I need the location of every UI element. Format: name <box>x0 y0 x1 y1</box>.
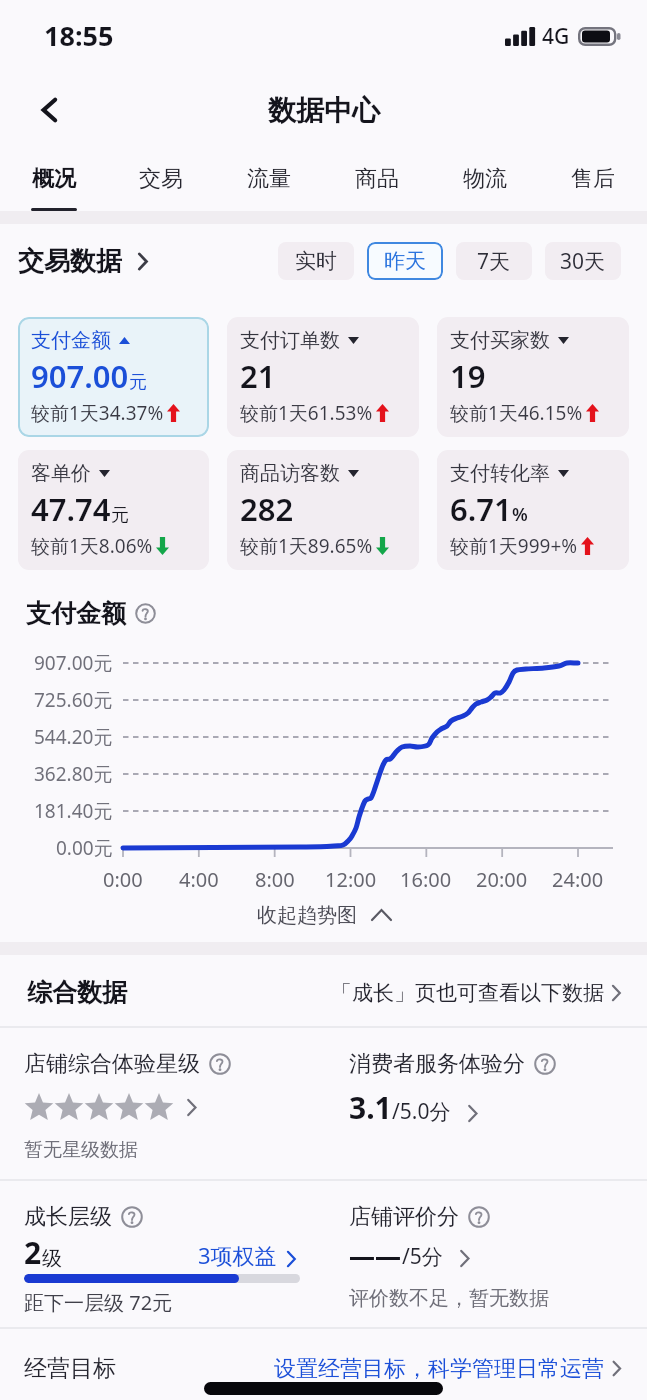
button[interactable]: 收起趋势图 <box>0 895 647 935</box>
staticText: 支付金额 <box>26 598 126 629</box>
staticText: 支付转化率 <box>450 461 550 486</box>
staticText: 181.40元 <box>34 798 113 824</box>
staticText: 0:00 <box>103 866 143 893</box>
staticText: 12:00 <box>325 866 377 893</box>
staticText: 商品访客数 <box>240 461 340 486</box>
staticText: 较前1天34.37% <box>31 400 164 426</box>
staticText: 「成长」页也可查看以下数据 <box>331 980 604 1006</box>
button[interactable]: 昨天 <box>367 242 443 280</box>
staticText: 30天 <box>560 247 606 276</box>
staticText: 经营目标 <box>24 1354 116 1383</box>
staticText: 交易数据 <box>18 245 122 278</box>
staticText: 店铺评价分 <box>349 1203 459 1231</box>
staticText: 8:00 <box>255 866 295 893</box>
button[interactable]: 交易数据 <box>18 245 152 278</box>
staticText: —— <box>349 1238 402 1273</box>
staticText: 较前1天89.65% <box>240 533 373 559</box>
button[interactable]: 商品访客数 <box>227 450 419 570</box>
staticText: 支付买家数 <box>450 328 550 353</box>
staticText: 4G <box>542 22 570 51</box>
staticText: 店铺综合体验星级 <box>24 1050 200 1078</box>
staticText: 20:00 <box>476 866 528 893</box>
staticText: 3项权益 <box>198 1240 277 1270</box>
staticText: 收起趋势图 <box>257 903 357 928</box>
button[interactable]: 店铺综合体验星级 <box>24 1028 325 1162</box>
staticText: 交易 <box>139 165 183 193</box>
staticText: 元 <box>111 504 129 527</box>
staticText: 级 <box>42 1246 62 1271</box>
staticText: 设置经营目标，科学管理日常运营 <box>274 1355 604 1383</box>
staticText: 概况 <box>32 165 76 193</box>
staticText: 消费者服务体验分 <box>349 1050 525 1078</box>
staticText: 客单价 <box>31 461 91 486</box>
button[interactable]: 实时 <box>278 242 354 280</box>
staticText: 725.60元 <box>34 687 113 713</box>
button[interactable]: 支付买家数 <box>437 317 629 437</box>
button[interactable]: 店铺评价分 <box>349 1181 549 1311</box>
staticText: 物流 <box>463 165 507 193</box>
staticText: 907.00元 <box>34 650 113 676</box>
button[interactable]: 交易 <box>107 148 215 211</box>
staticText: 商品 <box>355 165 399 193</box>
staticText: 907.00 <box>31 355 129 397</box>
staticText: 16:00 <box>400 866 452 893</box>
staticText: 较前1天8.06% <box>31 533 153 559</box>
button[interactable]: 支付金额 <box>18 317 209 437</box>
staticText: 售后 <box>571 165 615 193</box>
staticText: 24:00 <box>552 866 604 893</box>
staticText: % <box>512 502 528 527</box>
staticText: 2 <box>24 1232 42 1273</box>
staticText: /5分 <box>402 1242 443 1271</box>
button[interactable]: 成长层级 <box>24 1181 325 1316</box>
staticText: 282 <box>240 488 294 530</box>
staticText: 较前1天999+% <box>450 533 578 559</box>
staticText: 6.71 <box>450 488 512 530</box>
button[interactable]: 客单价 <box>18 450 209 570</box>
staticText: 昨天 <box>384 248 426 274</box>
staticText: /5.0分 <box>392 1097 451 1126</box>
staticText: 362.80元 <box>34 761 113 787</box>
staticText: 支付金额 <box>31 328 111 353</box>
button[interactable]: 物流 <box>431 148 539 211</box>
staticText: 实时 <box>295 248 337 274</box>
staticText: 21 <box>240 355 276 397</box>
button[interactable]: 7天 <box>456 242 532 280</box>
staticText: 成长层级 <box>24 1203 112 1231</box>
button[interactable]: 消费者服务体验分 <box>349 1028 556 1128</box>
staticText: 19 <box>450 355 486 397</box>
staticText: 7天 <box>477 247 511 276</box>
staticText: 4:00 <box>179 866 219 893</box>
button[interactable]: 商品 <box>323 148 431 211</box>
button[interactable]: 流量 <box>215 148 323 211</box>
button[interactable]: 30天 <box>545 242 621 280</box>
staticText: 较前1天46.15% <box>450 400 583 426</box>
staticText: 流量 <box>247 165 291 193</box>
staticText: 3.1 <box>349 1087 392 1128</box>
button[interactable]: Back <box>22 82 78 138</box>
staticText: 支付订单数 <box>240 328 340 353</box>
staticText: 47.74 <box>31 488 111 530</box>
button[interactable]: 支付订单数 <box>227 317 419 437</box>
button[interactable]: 售后 <box>539 148 647 211</box>
staticText: 数据中心 <box>268 93 380 128</box>
staticText: 暂无星级数据 <box>24 1138 138 1162</box>
button[interactable]: 概况 <box>0 148 107 211</box>
button[interactable]: 支付转化率 <box>437 450 629 570</box>
staticText: 18:55 <box>44 17 114 54</box>
staticText: 距下一层级 72元 <box>24 1289 173 1316</box>
staticText: 评价数不足，暂无数据 <box>349 1286 549 1311</box>
staticText: 0.00元 <box>56 835 113 861</box>
staticText: 元 <box>129 371 147 394</box>
staticText: 较前1天61.53% <box>240 400 373 426</box>
staticText: 544.20元 <box>34 724 113 750</box>
button[interactable]: 「成长」页也可查看以下数据 <box>331 980 625 1006</box>
staticText: 综合数据 <box>27 977 127 1008</box>
